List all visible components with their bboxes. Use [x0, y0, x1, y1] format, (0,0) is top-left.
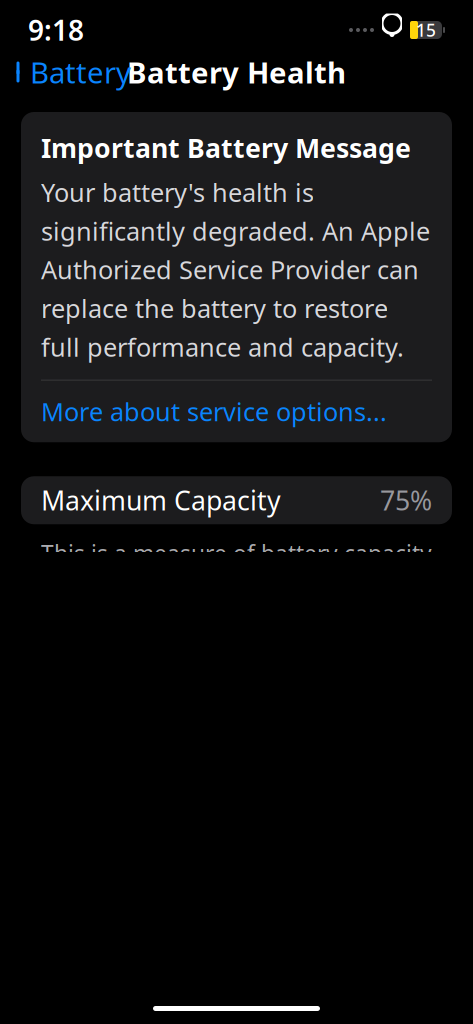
- staticText: Battery Health: [127, 52, 346, 91]
- staticText: More about service options...: [41, 395, 387, 428]
- staticText: This is a measure of battery capacity re…: [41, 538, 432, 671]
- staticText: Battery: [30, 52, 131, 91]
- staticText: 9:18: [28, 11, 84, 49]
- staticText: 75%: [380, 483, 432, 518]
- staticText: Maximum Capacity: [41, 483, 281, 518]
- staticText: Your battery's health is significantly d…: [41, 175, 430, 364]
- button[interactable]: Battery: [0, 44, 143, 99]
- button[interactable]: More about service options...: [41, 381, 432, 442]
- staticText: To reduce battery aging, iPhone learns f…: [41, 907, 427, 1024]
- staticText: Important Battery Message: [41, 130, 411, 165]
- staticText: 15: [416, 18, 436, 41]
